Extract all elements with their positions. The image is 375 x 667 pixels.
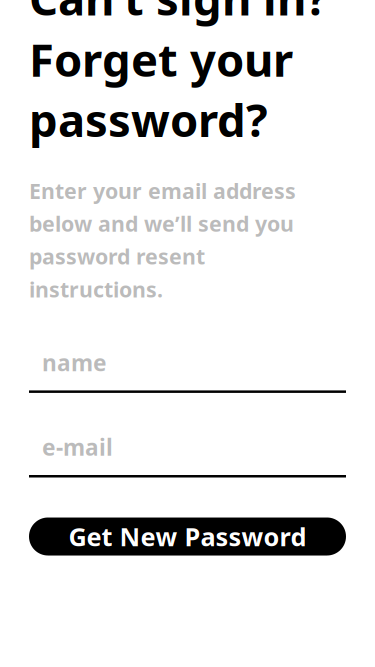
staticText: Can’t sign in? [29,0,328,28]
staticText: e-mail [42,432,113,462]
button[interactable]: Get New Password [29,517,346,555]
button[interactable]: e-mail [29,432,346,477]
button[interactable]: name [29,347,346,393]
staticText: name [42,347,107,377]
staticText: Enter your email address below and we’ll… [29,176,296,303]
staticText: Get New Password [68,520,306,553]
staticText: Forget your password? [29,29,293,149]
